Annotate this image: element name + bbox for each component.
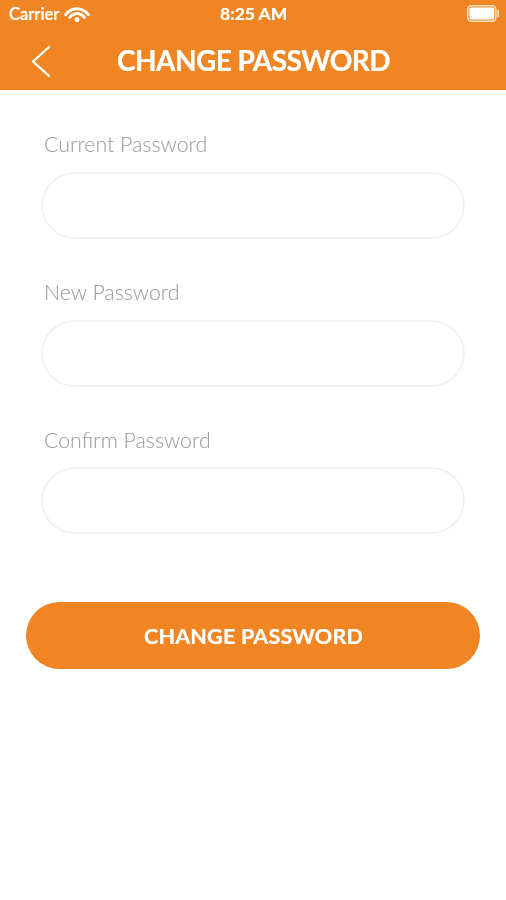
button[interactable]: Confirm Password <box>41 467 465 534</box>
button[interactable]: Back <box>12 30 70 92</box>
staticText: Confirm Password <box>44 427 211 453</box>
staticText: 8:25 AM <box>220 3 288 24</box>
button[interactable]: CHANGE PASSWORD <box>26 602 480 669</box>
staticText: CHANGE PASSWORD <box>117 43 390 77</box>
staticText: CHANGE PASSWORD <box>144 623 363 649</box>
staticText: Carrier <box>9 4 60 24</box>
button[interactable]: Current Password <box>41 172 465 239</box>
staticText: New Password <box>44 279 180 305</box>
staticText: Current Password <box>44 131 208 157</box>
button[interactable]: New Password <box>41 320 465 387</box>
